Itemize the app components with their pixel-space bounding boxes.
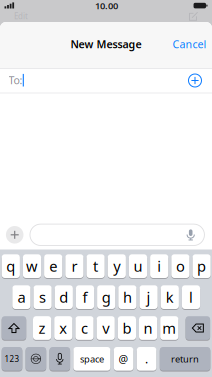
button[interactable]: space xyxy=(73,346,110,371)
button[interactable]: b xyxy=(118,316,136,340)
button[interactable]: d xyxy=(55,285,73,309)
button[interactable]: Message field xyxy=(30,224,204,245)
staticText: Edit xyxy=(14,11,28,21)
staticText: . xyxy=(145,351,148,367)
button[interactable]: Dictate xyxy=(184,228,198,242)
staticText: d xyxy=(59,287,68,307)
staticText: space xyxy=(80,353,104,365)
button[interactable]: Next Keyboard xyxy=(26,346,46,371)
staticText: c xyxy=(81,318,88,338)
button[interactable]: Shift xyxy=(2,316,26,340)
staticText: q xyxy=(6,256,15,276)
staticText: g xyxy=(102,287,111,307)
staticText: u xyxy=(133,256,142,276)
staticText: m xyxy=(162,318,176,338)
button[interactable]: m xyxy=(160,316,178,340)
button[interactable]: g xyxy=(97,285,115,309)
button[interactable]: c xyxy=(75,316,94,340)
button[interactable]: k xyxy=(161,285,179,309)
button[interactable]: return xyxy=(160,346,210,371)
button[interactable]: r xyxy=(65,254,83,278)
button[interactable]: t xyxy=(86,254,105,278)
staticText: s xyxy=(39,287,46,307)
button[interactable]: Cancel xyxy=(172,37,206,51)
staticText: h xyxy=(123,287,132,307)
staticText: p xyxy=(197,256,206,276)
button[interactable]: Dictate xyxy=(49,346,70,371)
staticText: 10.00 xyxy=(95,0,118,12)
button[interactable]: i xyxy=(150,254,168,278)
button[interactable]: To xyxy=(0,69,212,92)
staticText: v xyxy=(102,318,109,338)
button[interactable]: f xyxy=(76,285,94,309)
button[interactable]: 123 xyxy=(2,346,22,371)
staticText: y xyxy=(113,256,120,276)
staticText: 123 xyxy=(4,353,19,364)
button[interactable]: q xyxy=(2,254,20,278)
staticText: b xyxy=(122,318,131,338)
staticText: x xyxy=(59,318,67,338)
button[interactable]: . xyxy=(137,346,156,371)
staticText: k xyxy=(166,287,174,307)
button[interactable]: Delete xyxy=(186,316,210,340)
staticText: @ xyxy=(119,352,129,366)
staticText: a xyxy=(17,287,25,307)
button[interactable]: v xyxy=(97,316,115,340)
button[interactable]: s xyxy=(33,285,52,309)
staticText: f xyxy=(82,287,87,307)
staticText: New Message xyxy=(70,37,141,51)
staticText: l xyxy=(189,287,193,307)
button[interactable]: e xyxy=(44,254,62,278)
staticText: w xyxy=(26,256,38,276)
staticText: return xyxy=(171,353,199,365)
button[interactable]: n xyxy=(139,316,157,340)
button[interactable]: a xyxy=(12,285,30,309)
button[interactable]: l xyxy=(182,285,200,309)
staticText: z xyxy=(39,318,46,338)
button[interactable]: h xyxy=(118,285,136,309)
button[interactable]: j xyxy=(139,285,158,309)
button[interactable]: Add Contact xyxy=(187,72,203,88)
button[interactable]: p xyxy=(192,254,211,278)
button[interactable]: o xyxy=(171,254,189,278)
staticText: i xyxy=(157,256,161,276)
staticText: n xyxy=(144,318,153,338)
button[interactable]: u xyxy=(129,254,147,278)
button[interactable]: y xyxy=(108,254,126,278)
staticText: r xyxy=(71,256,77,276)
button[interactable]: w xyxy=(23,254,41,278)
staticText: To: xyxy=(8,73,22,87)
button[interactable]: x xyxy=(54,316,72,340)
staticText: o xyxy=(176,256,185,276)
staticText: t xyxy=(93,256,98,276)
staticText: Cancel xyxy=(172,37,206,51)
staticText: j xyxy=(147,287,151,307)
button[interactable]: Apps xyxy=(5,225,24,244)
staticText: e xyxy=(49,256,57,276)
button[interactable]: z xyxy=(33,316,51,340)
button[interactable]: @ xyxy=(114,346,133,371)
